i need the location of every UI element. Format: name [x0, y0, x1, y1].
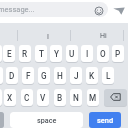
staticText: L: [106, 71, 111, 81]
button[interactable]: N: [70, 89, 82, 106]
staticText: send: [97, 116, 114, 125]
button[interactable]: I: [40, 29, 56, 43]
button[interactable]: [94, 6, 104, 16]
button[interactable]: R: [19, 45, 31, 62]
staticText: D: [9, 71, 15, 81]
staticText: G: [41, 71, 47, 81]
staticText: B: [57, 93, 63, 103]
button[interactable]: send: [89, 112, 121, 128]
button[interactable]: [112, 3, 126, 16]
staticText: V: [40, 93, 46, 103]
staticText: I: [86, 49, 89, 59]
button[interactable]: J: [70, 67, 82, 84]
staticText: U: [69, 49, 75, 59]
staticText: E: [7, 49, 12, 59]
button[interactable]: O: [97, 45, 109, 62]
staticText: I: [47, 32, 49, 40]
button[interactable]: D: [6, 67, 18, 84]
staticText: J: [74, 71, 79, 81]
staticText: R: [22, 49, 28, 59]
button[interactable]: P: [112, 45, 124, 62]
button[interactable]: [0, 67, 3, 84]
button[interactable]: [0, 2, 108, 17]
button[interactable]: K: [86, 67, 98, 84]
button[interactable]: T: [35, 45, 47, 62]
staticText: C: [24, 93, 30, 103]
staticText: H: [57, 71, 63, 81]
button[interactable]: C: [21, 89, 33, 106]
staticText: Hi: [100, 32, 107, 40]
button[interactable]: H: [54, 67, 66, 84]
staticText: T: [39, 49, 44, 59]
staticText: X: [7, 93, 13, 103]
button[interactable]: E: [3, 45, 15, 62]
button[interactable]: X: [4, 89, 16, 106]
staticText: Y: [54, 49, 59, 59]
button[interactable]: V: [37, 89, 49, 106]
button[interactable]: [104, 89, 127, 106]
button[interactable]: L: [102, 67, 114, 84]
button[interactable]: [0, 45, 2, 62]
button[interactable]: [0, 112, 4, 128]
staticText: M: [89, 93, 97, 103]
button[interactable]: U: [66, 45, 78, 62]
button[interactable]: F: [22, 67, 34, 84]
staticText: space: [37, 116, 57, 124]
staticText: N: [73, 93, 79, 103]
button[interactable]: B: [54, 89, 66, 106]
staticText: K: [89, 71, 95, 81]
button[interactable]: G: [38, 67, 50, 84]
button[interactable]: Hi: [95, 29, 111, 43]
staticText: P: [115, 49, 121, 59]
button[interactable]: space: [10, 112, 83, 128]
staticText: message...: [0, 5, 35, 14]
staticText: F: [26, 71, 31, 81]
button[interactable]: Y: [50, 45, 62, 62]
staticText: O: [100, 49, 106, 59]
button[interactable]: M: [87, 89, 99, 106]
button[interactable]: I: [81, 45, 93, 62]
button[interactable]: [0, 89, 2, 106]
